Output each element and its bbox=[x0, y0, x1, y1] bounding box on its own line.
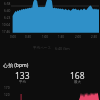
staticText: 平均 bbox=[19, 80, 26, 84]
staticText: 0:00 bbox=[10, 35, 16, 39]
staticText: 6:40 bbox=[4, 9, 11, 13]
staticText: 133 bbox=[15, 70, 30, 82]
staticText: 6:58 bbox=[4, 2, 11, 6]
staticText: 2:30 bbox=[91, 35, 97, 39]
staticText: 2:00 bbox=[75, 35, 81, 39]
staticText: 6:23 bbox=[4, 16, 11, 20]
staticText: 170 bbox=[4, 86, 10, 90]
staticText: 120 bbox=[4, 93, 10, 97]
staticText: 10:04 bbox=[2, 23, 11, 27]
staticText: 最大 bbox=[74, 80, 81, 84]
staticText: 17:46 bbox=[2, 30, 11, 34]
staticText: 1:30 bbox=[58, 35, 64, 39]
staticText: 0:30 bbox=[25, 35, 31, 39]
staticText: 168 bbox=[70, 70, 85, 82]
staticText: 1:00 bbox=[42, 35, 48, 39]
staticText: 心拍 (bpm) bbox=[3, 62, 29, 69]
staticText: 6:40 /km bbox=[55, 46, 70, 51]
staticText: 平均ペース bbox=[33, 46, 52, 51]
